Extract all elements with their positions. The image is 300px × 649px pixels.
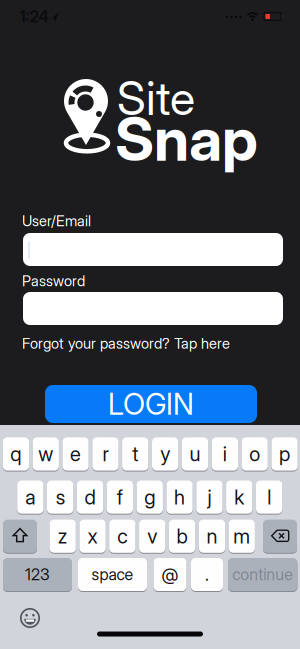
button[interactable]: m xyxy=(229,519,255,553)
button[interactable]: v xyxy=(139,519,165,553)
button[interactable]: Forgot your password? Tap here xyxy=(22,335,282,352)
staticText: Password xyxy=(22,272,85,290)
button[interactable]: LOGIN xyxy=(45,385,257,423)
button[interactable]: q xyxy=(3,437,29,471)
staticText: Site xyxy=(117,70,195,126)
button[interactable]: n xyxy=(199,519,225,553)
button[interactable]: s xyxy=(47,480,73,514)
button[interactable]: 123 xyxy=(3,557,72,591)
staticText: b xyxy=(177,524,188,548)
button[interactable]: p xyxy=(271,437,298,471)
button[interactable] xyxy=(3,519,37,553)
staticText: s xyxy=(56,485,65,509)
staticText: . xyxy=(205,564,209,585)
button[interactable]: b xyxy=(169,519,195,553)
button[interactable]: o xyxy=(241,437,268,471)
button[interactable]: i xyxy=(212,437,238,471)
button[interactable]: g xyxy=(137,480,163,514)
staticText: @ xyxy=(161,564,178,585)
staticText: y xyxy=(160,442,170,466)
staticText: c xyxy=(117,524,127,548)
staticText: space xyxy=(91,565,133,584)
staticText: e xyxy=(70,442,81,466)
staticText: w xyxy=(38,442,53,466)
button[interactable] xyxy=(23,292,283,325)
button[interactable] xyxy=(263,519,297,553)
button[interactable]: y xyxy=(152,437,178,471)
button[interactable]: e xyxy=(62,437,89,471)
staticText: Snap xyxy=(115,104,258,174)
staticText: z xyxy=(58,524,68,548)
staticText: Forgot your password? Tap here xyxy=(22,335,230,352)
staticText: User/Email xyxy=(22,212,91,230)
staticText: q xyxy=(10,442,21,466)
button[interactable]: z xyxy=(49,519,76,553)
button[interactable]: a xyxy=(17,480,43,514)
button[interactable]: k xyxy=(226,480,252,514)
staticText: LOGIN xyxy=(108,387,194,421)
staticText: j xyxy=(207,485,211,509)
staticText: i xyxy=(223,442,227,466)
staticText: k xyxy=(234,485,244,509)
staticText: x xyxy=(88,524,98,548)
button[interactable]: x xyxy=(79,519,106,553)
button[interactable]: c xyxy=(109,519,135,553)
button[interactable]: r xyxy=(92,437,119,471)
button[interactable]: j xyxy=(196,480,223,514)
staticText: a xyxy=(25,485,35,509)
staticText: f xyxy=(117,485,123,509)
staticText: continue xyxy=(232,565,293,584)
staticText: l xyxy=(267,485,271,509)
button[interactable] xyxy=(23,233,283,266)
button[interactable]: u xyxy=(182,437,208,471)
staticText: p xyxy=(279,442,290,466)
staticText: 123 xyxy=(25,565,50,584)
staticText: t xyxy=(132,442,138,466)
button[interactable]: h xyxy=(166,480,193,514)
button[interactable]: l xyxy=(256,480,282,514)
staticText: m xyxy=(233,524,250,548)
button[interactable]: @ xyxy=(153,557,186,591)
staticText: 1:24 xyxy=(19,7,48,26)
button[interactable]: continue xyxy=(228,557,297,591)
button[interactable] xyxy=(20,608,40,628)
staticText: v xyxy=(147,524,157,548)
staticText: n xyxy=(206,524,217,548)
staticText: r xyxy=(102,442,108,466)
button[interactable]: d xyxy=(77,480,103,514)
button[interactable]: . xyxy=(191,557,223,591)
button[interactable]: space xyxy=(78,557,147,591)
staticText: h xyxy=(174,485,185,509)
staticText: o xyxy=(249,442,260,466)
staticText: u xyxy=(189,442,200,466)
staticText: g xyxy=(144,485,155,509)
button[interactable]: w xyxy=(33,437,59,471)
button[interactable]: t xyxy=(122,437,148,471)
button[interactable]: f xyxy=(107,480,133,514)
staticText: d xyxy=(85,485,96,509)
